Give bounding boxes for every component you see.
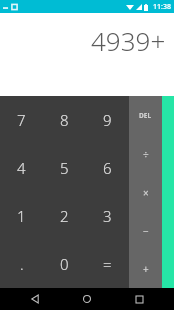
button[interactable]: 1 — [0, 192, 43, 240]
staticText: × — [143, 186, 149, 200]
button[interactable]: . — [0, 240, 43, 288]
staticText: ÷ — [143, 148, 149, 162]
staticText: 0 — [60, 254, 69, 274]
staticText: 8 — [60, 110, 69, 130]
button[interactable]: 4 — [0, 144, 43, 192]
button[interactable]: 3 — [86, 192, 129, 240]
button[interactable]: − — [129, 212, 162, 250]
button[interactable]: × — [129, 174, 162, 212]
button[interactable]: 2 — [43, 192, 86, 240]
staticText: . — [20, 254, 24, 274]
staticText: 3 — [103, 206, 112, 226]
button[interactable]: 9 — [86, 96, 129, 144]
button[interactable]: Home — [70, 288, 104, 310]
button[interactable]: Back — [18, 288, 52, 310]
staticText: − — [143, 224, 149, 238]
staticText: 7 — [17, 110, 26, 130]
staticText: 2 — [60, 206, 69, 226]
staticText: + — [143, 262, 149, 276]
staticText: DEL — [139, 111, 152, 120]
button[interactable]: + — [129, 250, 162, 288]
button[interactable]: = — [86, 240, 129, 288]
button[interactable]: Recents — [122, 288, 156, 310]
staticText: 6 — [103, 158, 112, 178]
button[interactable]: 5 — [43, 144, 86, 192]
staticText: 11:38 — [153, 2, 171, 12]
staticText: = — [103, 254, 112, 274]
button[interactable]: 6 — [86, 144, 129, 192]
staticText: 1 — [17, 206, 26, 226]
staticText: 4939+ — [91, 23, 166, 58]
staticText: 9 — [103, 110, 112, 130]
button[interactable]: ÷ — [129, 135, 162, 174]
staticText: 5 — [60, 158, 69, 178]
button[interactable]: 8 — [43, 96, 86, 144]
staticText: 4 — [17, 158, 26, 178]
button[interactable]: 7 — [0, 96, 43, 144]
button[interactable]: 0 — [43, 240, 86, 288]
button[interactable]: DEL — [129, 96, 162, 135]
